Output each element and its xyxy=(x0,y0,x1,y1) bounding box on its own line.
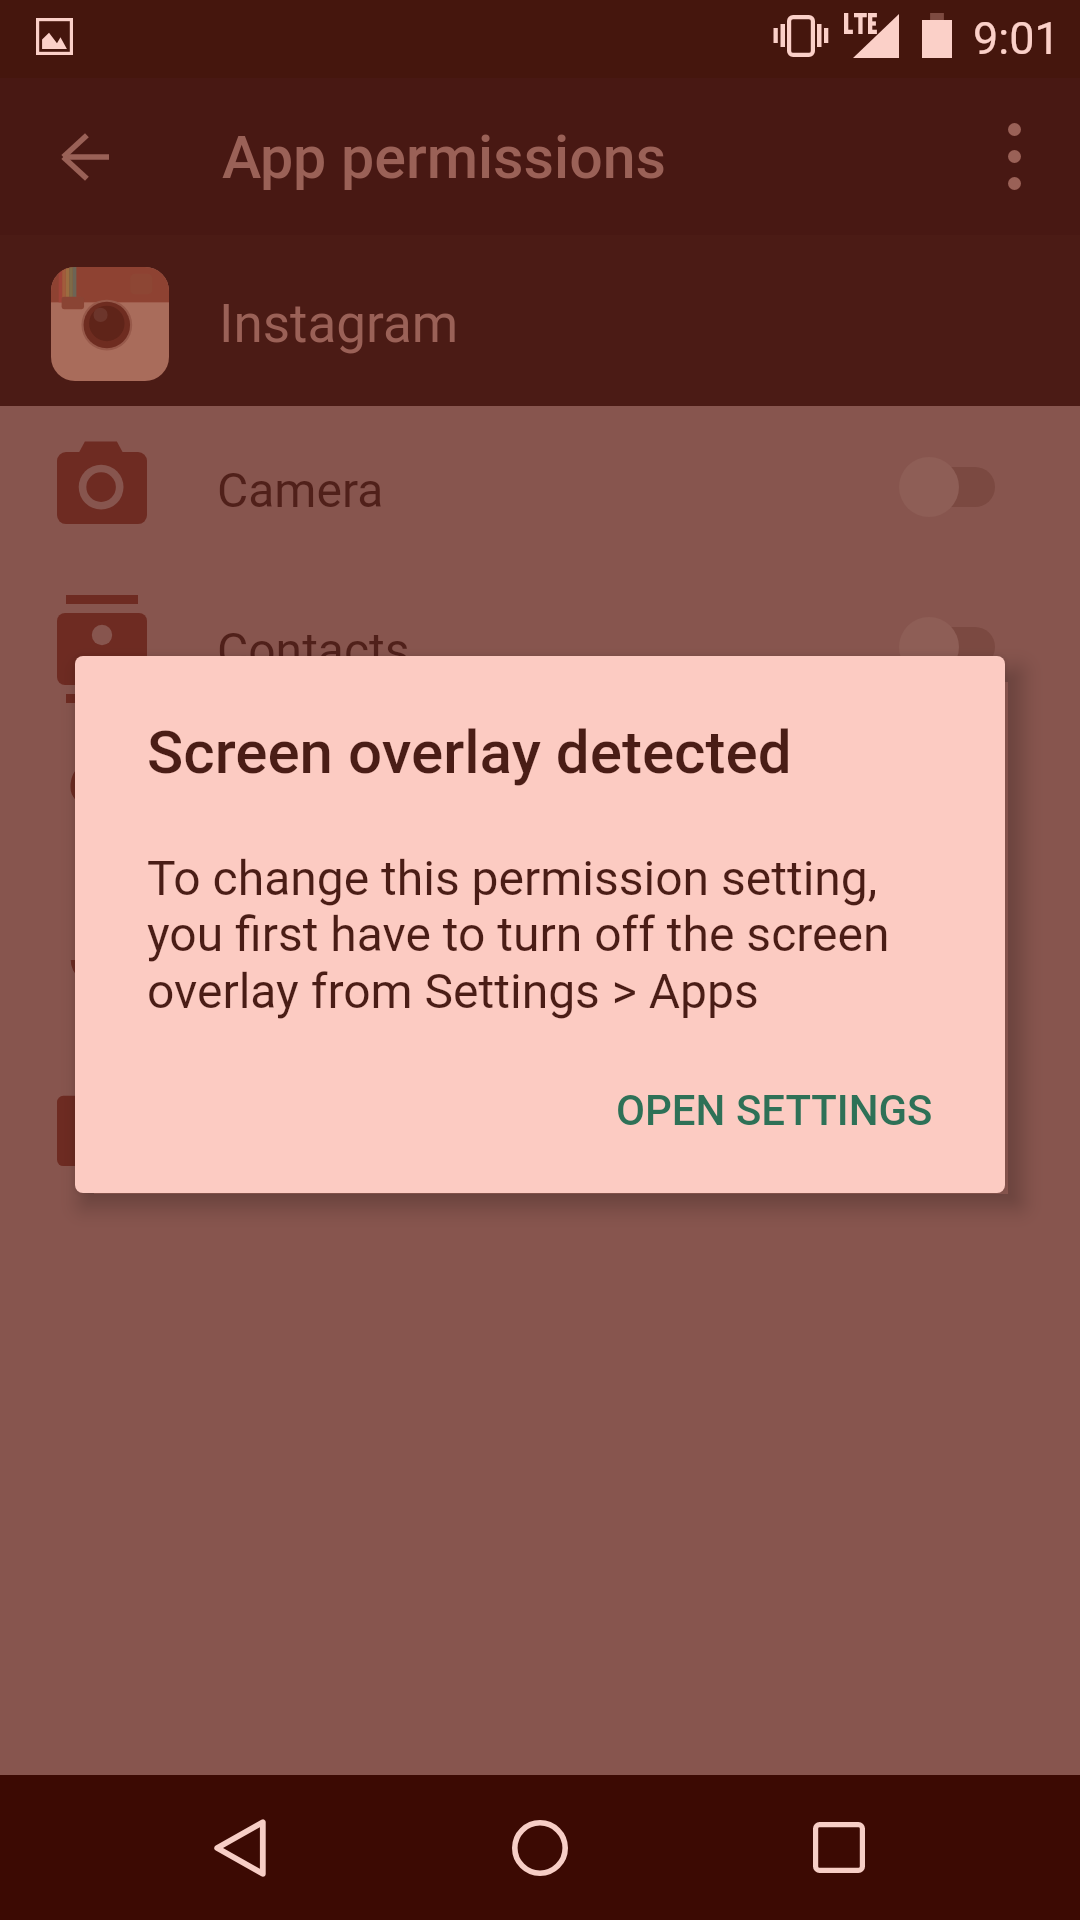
button[interactable]: More options xyxy=(959,78,1069,235)
staticText: Contacts xyxy=(217,622,410,678)
button[interactable]: Phone xyxy=(0,1046,1080,1206)
button[interactable]: OPEN SETTINGS xyxy=(586,1064,963,1157)
staticText: 9:01 xyxy=(973,12,1060,65)
staticText: Microphone xyxy=(217,942,472,998)
staticText: OPEN SETTINGS xyxy=(616,1086,933,1135)
staticText: To change this permission setting, you f… xyxy=(147,850,890,1020)
staticText: Screen overlay detected xyxy=(147,717,792,787)
button[interactable]: Instagram xyxy=(0,235,1080,406)
button[interactable]: Navigate up xyxy=(12,78,157,235)
button[interactable]: Home xyxy=(450,1775,630,1920)
button[interactable]: Recent apps xyxy=(749,1775,929,1920)
staticText: Instagram xyxy=(219,293,459,355)
button[interactable]: Contacts xyxy=(0,566,1080,726)
button[interactable]: Camera xyxy=(0,406,1080,566)
staticText: Camera xyxy=(217,462,384,518)
button[interactable]: Back xyxy=(150,1775,330,1920)
staticText: App permissions xyxy=(222,123,667,192)
button[interactable]: Microphone xyxy=(0,886,1080,1046)
button[interactable]: Location xyxy=(0,726,1080,886)
